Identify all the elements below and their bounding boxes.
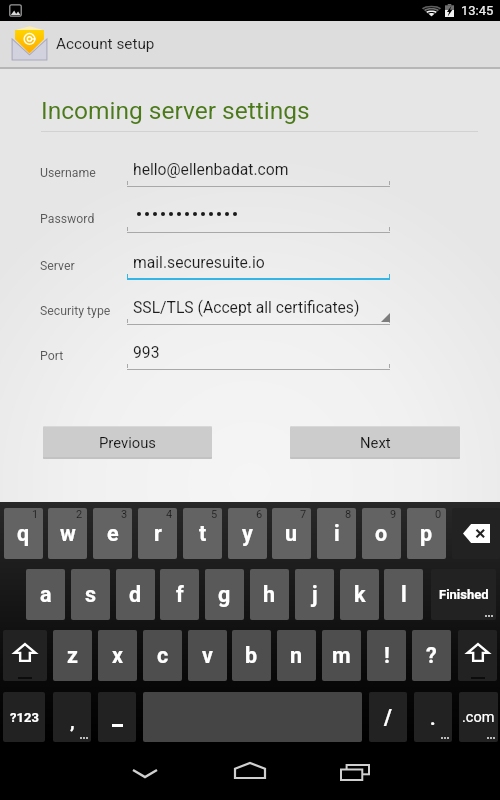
- button[interactable]: n: [277, 630, 316, 681]
- button[interactable]: ?123: [3, 692, 45, 742]
- button[interactable]: Security type: [0, 293, 500, 325]
- staticText: Previous: [99, 434, 156, 451]
- button[interactable]: m: [322, 630, 361, 681]
- staticText: .: [430, 707, 436, 729]
- button[interactable]: s: [71, 569, 110, 620]
- staticText: w: [60, 521, 76, 546]
- button[interactable]: Password: [0, 201, 500, 233]
- staticText: 993: [133, 343, 160, 361]
- staticText: SSL/TLS (Accept all certificates): [133, 298, 360, 316]
- staticText: z: [67, 643, 78, 668]
- staticText: p: [420, 521, 433, 546]
- button[interactable]: h: [250, 569, 289, 620]
- button[interactable]: /: [369, 692, 407, 742]
- button[interactable]: p: [407, 508, 446, 559]
- staticText: m: [332, 643, 351, 668]
- staticText: s: [85, 582, 97, 607]
- button[interactable]: q: [4, 508, 43, 559]
- staticText: !: [384, 643, 390, 668]
- staticText: .com: [462, 709, 495, 726]
- button[interactable]: Finished: [431, 569, 496, 620]
- button[interactable]: Previous: [43, 426, 212, 459]
- button[interactable]: Shift: [458, 630, 497, 681]
- button[interactable]: Backspace: [452, 508, 500, 559]
- staticText: y: [242, 521, 253, 546]
- staticText: b: [245, 643, 258, 668]
- button[interactable]: .: [414, 692, 452, 742]
- staticText: c: [157, 643, 169, 668]
- button[interactable]: o: [362, 508, 401, 559]
- staticText: r: [154, 521, 162, 546]
- button[interactable]: j: [295, 569, 334, 620]
- button[interactable]: w: [48, 508, 87, 559]
- staticText: o: [375, 521, 388, 546]
- button[interactable]: c: [143, 630, 182, 681]
- staticText: g: [218, 582, 231, 607]
- staticText: 4: [166, 508, 173, 521]
- staticText: d: [129, 582, 142, 607]
- button[interactable]: Username: [0, 155, 500, 187]
- staticText: Password: [40, 212, 95, 226]
- staticText: 13:45: [461, 3, 494, 18]
- button[interactable]: Emoji: [98, 692, 136, 742]
- staticText: 8: [345, 508, 352, 521]
- button[interactable]: r: [138, 508, 177, 559]
- button[interactable]: v: [188, 630, 227, 681]
- staticText: 5: [211, 508, 218, 521]
- button[interactable]: l: [384, 569, 423, 620]
- button[interactable]: k: [340, 569, 379, 620]
- button[interactable]: d: [116, 569, 155, 620]
- staticText: 7: [300, 508, 307, 521]
- staticText: a: [40, 582, 52, 607]
- staticText: 6: [256, 508, 263, 521]
- staticText: Next: [360, 434, 391, 451]
- button[interactable]: Server: [0, 248, 500, 280]
- button[interactable]: y: [228, 508, 267, 559]
- staticText: ,: [70, 710, 75, 732]
- button[interactable]: Shift: [3, 630, 47, 681]
- staticText: e: [107, 521, 119, 546]
- button[interactable]: i: [317, 508, 356, 559]
- staticText: 9: [390, 508, 397, 521]
- button[interactable]: Home: [219, 742, 281, 800]
- staticText: 3: [121, 508, 128, 521]
- button[interactable]: e: [93, 508, 132, 559]
- button[interactable]: a: [26, 569, 65, 620]
- button[interactable]: f: [160, 569, 199, 620]
- button[interactable]: x: [98, 630, 137, 681]
- staticText: 2: [76, 508, 83, 521]
- staticText: t: [199, 521, 207, 546]
- button[interactable]: Next: [290, 426, 460, 459]
- staticText: j: [312, 582, 318, 607]
- button[interactable]: b: [232, 630, 271, 681]
- button[interactable]: u: [272, 508, 311, 559]
- staticText: Port: [40, 349, 64, 363]
- button[interactable]: Hide keyboard: [114, 742, 176, 800]
- button[interactable]: Account setup: [0, 21, 500, 67]
- button[interactable]: !: [367, 630, 406, 681]
- button[interactable]: Port: [0, 338, 500, 370]
- staticText: k: [354, 582, 366, 607]
- button[interactable]: ,: [53, 692, 91, 742]
- staticText: u: [285, 521, 298, 546]
- button[interactable]: .com: [459, 692, 498, 742]
- staticText: i: [334, 521, 340, 546]
- staticText: 0: [435, 508, 442, 521]
- staticText: q: [17, 521, 30, 546]
- staticText: ?: [426, 643, 437, 668]
- staticText: v: [202, 643, 213, 668]
- button[interactable]: ?: [412, 630, 451, 681]
- button[interactable]: g: [205, 569, 244, 620]
- button[interactable]: z: [53, 630, 92, 681]
- button[interactable]: Recent apps: [324, 742, 386, 800]
- staticText: ?123: [10, 710, 39, 725]
- staticText: Finished: [439, 587, 489, 602]
- staticText: Account setup: [56, 35, 155, 53]
- staticText: Server: [40, 259, 75, 273]
- staticText: x: [112, 643, 123, 668]
- staticText: Incoming server settings: [41, 96, 310, 125]
- button[interactable]: t: [183, 508, 222, 559]
- staticText: hello@ellenbadat.com: [133, 160, 289, 178]
- staticText: /: [384, 705, 392, 730]
